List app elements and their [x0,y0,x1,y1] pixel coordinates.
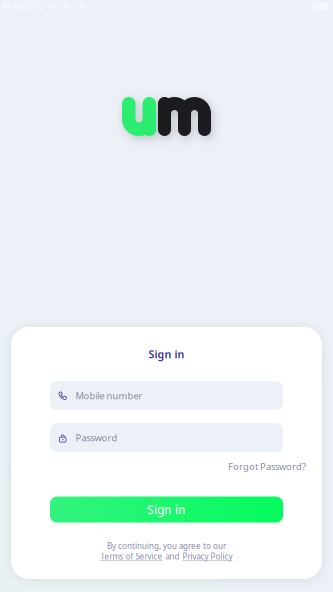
button[interactable]: Sign in [50,497,283,523]
staticText: Sign in [148,347,184,361]
button[interactable]: Privacy Policy [182,551,232,562]
staticText: Sign in [147,502,186,517]
staticText: Forgot Password? [228,460,306,473]
staticText: and [165,551,179,562]
button[interactable]: Mobile number [50,381,283,410]
staticText: Privacy Policy [182,551,232,562]
button[interactable]: Terms of Service [100,551,162,562]
button[interactable]: Password [50,423,283,452]
staticText: Mobile number [75,389,142,402]
staticText: Password [75,431,117,444]
staticText: Terms of Service [100,551,162,562]
staticText: By continuing, you agree to our [107,541,226,551]
button[interactable]: Forgot Password? [228,460,306,473]
